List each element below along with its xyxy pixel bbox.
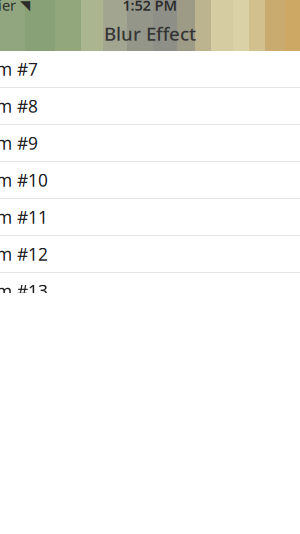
staticText: Item #13 xyxy=(0,279,48,302)
button[interactable]: Item #13 xyxy=(0,273,300,310)
staticText: Blur Effect xyxy=(104,21,196,46)
button[interactable]: Item #12 xyxy=(0,236,300,273)
staticText: Item #8 xyxy=(0,94,38,117)
button[interactable]: Item #9 xyxy=(0,125,300,162)
staticText: Carrier xyxy=(0,0,16,15)
staticText: 1:52 PM xyxy=(122,0,177,15)
staticText: Item #10 xyxy=(0,168,48,191)
button[interactable]: Item #8 xyxy=(0,88,300,125)
button[interactable]: Item #7 xyxy=(0,51,300,88)
staticText: ◥ xyxy=(16,0,30,13)
button[interactable]: Item #11 xyxy=(0,199,300,236)
staticText: Item #12 xyxy=(0,242,48,265)
button[interactable]: Item #10 xyxy=(0,162,300,199)
staticText: Item #9 xyxy=(0,131,38,154)
staticText: Item #11 xyxy=(0,205,48,228)
staticText: Item #7 xyxy=(0,57,38,80)
